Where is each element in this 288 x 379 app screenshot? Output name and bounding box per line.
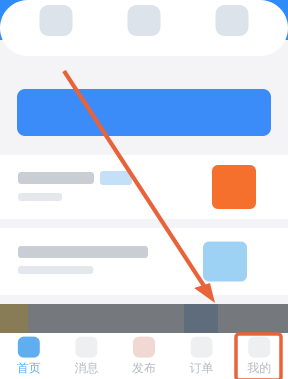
button[interactable]: 我的 bbox=[230, 335, 288, 377]
button[interactable]: 首页 bbox=[0, 335, 58, 377]
staticText: 我的 bbox=[247, 361, 271, 375]
button[interactable]: Quick action bbox=[12, 0, 100, 61]
staticText: 发布 bbox=[132, 361, 156, 375]
button[interactable]: 订单 bbox=[173, 335, 230, 377]
staticText: 订单 bbox=[190, 361, 214, 375]
button[interactable]: Quick action bbox=[188, 0, 276, 61]
button[interactable] bbox=[0, 228, 288, 295]
staticText: 消息 bbox=[74, 361, 98, 375]
button[interactable]: Quick action bbox=[100, 0, 188, 61]
staticText: 首页 bbox=[17, 361, 41, 375]
button[interactable]: Promotion banner bbox=[0, 89, 288, 136]
button[interactable]: 消息 bbox=[58, 335, 115, 377]
button[interactable]: 发布 bbox=[115, 335, 173, 377]
button[interactable] bbox=[0, 155, 288, 219]
